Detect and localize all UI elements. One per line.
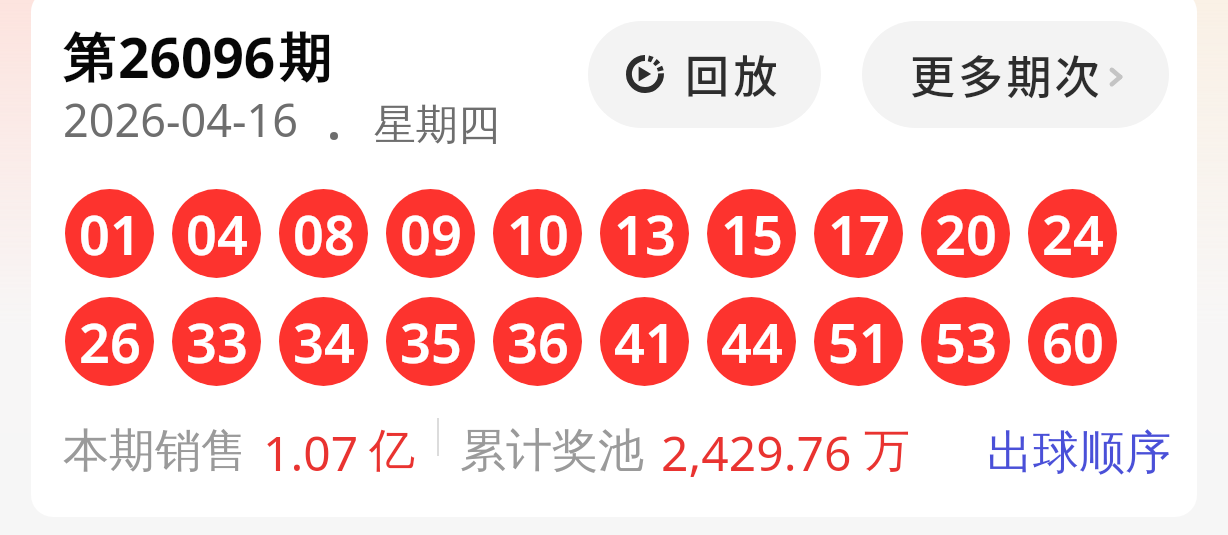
staticText: 2026-04-16 xyxy=(63,89,298,150)
staticText: 09 xyxy=(400,197,462,271)
staticText: 01 xyxy=(79,197,141,271)
staticText: 26096 xyxy=(118,19,276,94)
staticText: 20 xyxy=(935,197,997,271)
staticText: 亿 xyxy=(369,422,415,480)
staticText: 53 xyxy=(935,305,997,379)
staticText: 期 xyxy=(279,26,331,92)
staticText: 累计奖池 xyxy=(460,422,644,480)
staticText: 15 xyxy=(721,197,783,271)
staticText: 26 xyxy=(79,305,141,379)
staticText: 13 xyxy=(614,197,676,271)
staticText: 回放 xyxy=(685,42,783,106)
button[interactable]: 更多期次 xyxy=(862,21,1169,128)
staticText: 1.07 xyxy=(263,420,359,485)
staticText: 出球顺序 xyxy=(987,424,1171,482)
staticText: 17 xyxy=(828,197,890,271)
other: 更多期次 xyxy=(1101,62,1131,92)
staticText: 10 xyxy=(507,197,569,271)
staticText: 更多期次 xyxy=(910,42,1103,107)
button[interactable]: 回放 xyxy=(588,21,821,128)
staticText: 35 xyxy=(400,305,462,379)
staticText: 41 xyxy=(614,305,676,379)
staticText: 万 xyxy=(864,422,910,480)
staticText: 星期四 xyxy=(374,99,500,152)
staticText: 08 xyxy=(293,197,355,271)
staticText: 44 xyxy=(721,305,783,379)
staticText: 34 xyxy=(293,305,355,379)
staticText: 24 xyxy=(1042,197,1104,271)
staticText: 第 xyxy=(63,26,115,92)
staticText: 本期销售 xyxy=(63,422,247,480)
staticText: 36 xyxy=(507,305,569,379)
other: 回放 xyxy=(626,55,664,93)
staticText: 04 xyxy=(186,197,248,271)
staticText: 33 xyxy=(186,305,248,379)
staticText: 51 xyxy=(828,305,890,379)
staticText: 2,429.76 xyxy=(661,420,852,485)
staticText: 60 xyxy=(1042,305,1104,379)
button[interactable]: 出球顺序 xyxy=(987,424,1171,482)
